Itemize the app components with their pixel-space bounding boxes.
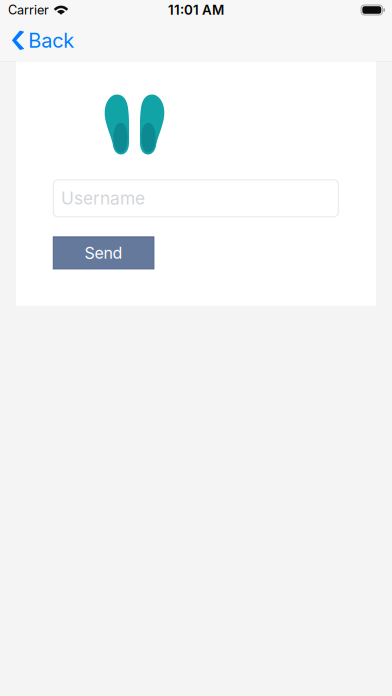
staticText: Carrier [8,2,49,18]
staticText: Back [28,28,74,53]
staticText: Username [61,188,145,209]
button[interactable]: Send [53,237,154,269]
staticText: Send [85,243,123,263]
staticText: 11:01 AM [168,2,224,18]
button[interactable]: Back [0,20,82,61]
